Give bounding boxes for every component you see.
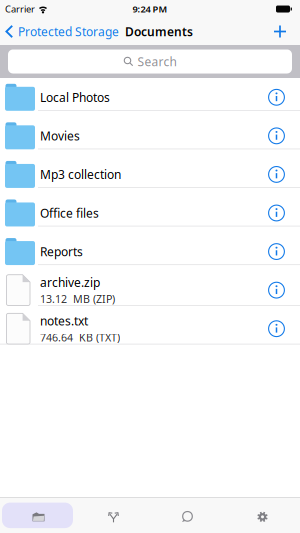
button[interactable]: Local Photos [0,78,300,117]
staticText: Protected Storage [18,23,119,39]
staticText: Movies [40,128,80,144]
button[interactable]: Files [0,498,75,533]
button[interactable]: Info [268,320,285,337]
button[interactable]: Protected Storage [0,23,119,39]
button[interactable]: Mp3 collection [0,155,300,194]
staticText: Search [137,53,176,69]
button[interactable]: Info [268,204,285,221]
button[interactable]: Reports [0,232,300,271]
staticText: notes.txt [40,313,88,329]
button[interactable]: Office files [0,194,300,232]
button[interactable]: Network [75,498,150,533]
button[interactable]: Settings [225,498,300,533]
staticText: Documents [125,23,193,39]
button[interactable]: Info [268,243,285,260]
staticText: 9:24 PM [132,3,167,15]
staticText: Carrier [5,3,35,15]
button[interactable]: Movies [0,117,300,155]
button[interactable]: Info [268,282,285,299]
staticText: Reports [40,244,83,259]
staticText: 746.64 KB (TXT) [40,330,120,344]
button[interactable]: Chat [150,498,225,533]
button[interactable]: archive.zip [0,271,300,309]
staticText: Office files [40,205,99,221]
button[interactable]: Info [268,127,285,144]
button[interactable]: Search [0,49,300,73]
button[interactable]: Add [274,25,300,37]
button[interactable]: Info [268,89,285,106]
staticText: Local Photos [40,89,110,105]
staticText: 13.12 MB (ZIP) [40,292,115,306]
staticText: Mp3 collection [40,166,121,182]
button[interactable]: notes.txt [0,309,300,348]
button[interactable]: Info [268,166,285,183]
staticText: archive.zip [40,274,100,290]
